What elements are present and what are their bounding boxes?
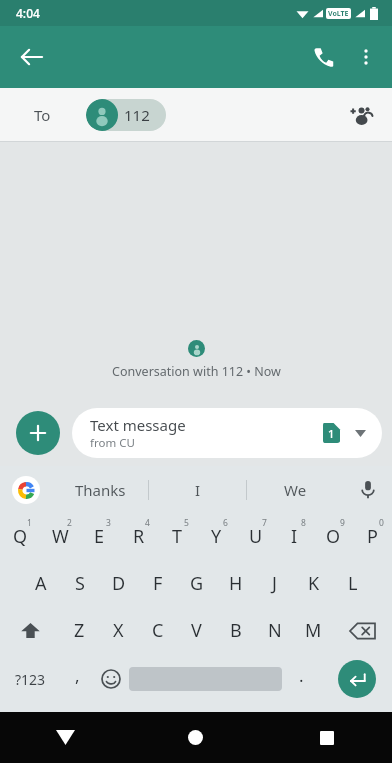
button[interactable]: . [282, 654, 321, 704]
button[interactable]: Z [60, 607, 99, 654]
button[interactable]: O [314, 513, 353, 560]
button[interactable]: Enter [338, 660, 376, 698]
button[interactable]: Hide keyboard [0, 712, 130, 763]
button[interactable]: I [275, 513, 314, 560]
button[interactable]: G [177, 560, 216, 607]
staticText: X [113, 618, 124, 643]
staticText: B [230, 618, 242, 643]
button[interactable]: SIM 1 [323, 423, 340, 443]
staticText: I [291, 524, 298, 549]
button[interactable]: V [177, 607, 216, 654]
button[interactable]: K [294, 560, 333, 607]
button[interactable]: Recent apps [261, 712, 392, 763]
button[interactable]: B [216, 607, 255, 654]
button[interactable]: Y [197, 513, 236, 560]
button[interactable]: 112 [86, 99, 166, 131]
button[interactable]: Text message [72, 408, 382, 458]
staticText: 7 [262, 517, 267, 529]
staticText: ?123 [15, 670, 46, 689]
button[interactable]: U [236, 513, 275, 560]
button[interactable]: E [80, 513, 119, 560]
button[interactable]: , [61, 654, 93, 704]
staticText: I [195, 480, 201, 500]
button[interactable]: More options [346, 37, 386, 77]
button[interactable]: Add people [340, 93, 384, 137]
button[interactable]: P [353, 513, 392, 560]
staticText: 2 [67, 517, 72, 529]
button[interactable]: F [138, 560, 177, 607]
button[interactable]: ?123 [0, 654, 61, 704]
staticText: R [133, 524, 145, 549]
button[interactable]: Thanks [52, 466, 148, 513]
button[interactable]: M [294, 607, 333, 654]
staticText: 9 [340, 517, 345, 529]
button[interactable]: H [216, 560, 255, 607]
staticText: M [305, 618, 322, 643]
staticText: , [75, 664, 80, 687]
button[interactable]: N [255, 607, 294, 654]
button[interactable]: L [333, 560, 372, 607]
button[interactable]: J [255, 560, 294, 607]
staticText: Text message [90, 415, 186, 435]
button[interactable]: R [119, 513, 158, 560]
staticText: D [112, 571, 126, 596]
button[interactable]: We [247, 466, 344, 513]
staticText: N [268, 618, 282, 643]
button[interactable]: Attach [16, 411, 60, 455]
staticText: 4:04 [16, 5, 40, 21]
button[interactable]: I [149, 466, 246, 513]
staticText: L [348, 571, 358, 596]
staticText: T [172, 524, 183, 549]
button[interactable]: S [60, 560, 99, 607]
button[interactable]: Emoji [93, 654, 129, 704]
staticText: 6 [223, 517, 228, 529]
staticText: A [35, 571, 47, 596]
staticText: Y [211, 524, 222, 549]
button[interactable]: Change SIM [348, 421, 372, 445]
staticText: 112 [124, 105, 150, 125]
staticText: 4 [145, 517, 150, 529]
staticText: Q [13, 524, 28, 549]
button[interactable]: W [40, 513, 80, 560]
staticText: U [249, 524, 263, 549]
button[interactable]: T [158, 513, 197, 560]
staticText: Z [74, 618, 85, 643]
staticText: . [299, 664, 304, 687]
staticText: K [308, 571, 320, 596]
staticText: 8 [301, 517, 306, 529]
button[interactable]: Shift [0, 607, 60, 654]
staticText: VoLTE [328, 9, 349, 19]
staticText: W [52, 524, 69, 549]
staticText: G [190, 571, 204, 596]
staticText: We [284, 480, 307, 500]
button[interactable]: Google [0, 466, 52, 513]
staticText: from CU [90, 435, 135, 451]
staticText: Thanks [75, 480, 126, 500]
staticText: H [229, 571, 243, 596]
staticText: V [191, 618, 202, 643]
staticText: To [34, 105, 51, 125]
staticText: 3 [106, 517, 111, 529]
button[interactable]: Call [302, 35, 346, 79]
staticText: P [367, 524, 378, 549]
button[interactable]: X [99, 607, 138, 654]
button[interactable]: Q [0, 513, 40, 560]
staticText: 5 [184, 517, 189, 529]
button[interactable]: Back [8, 33, 56, 81]
button[interactable]: Backspace [333, 607, 392, 654]
button[interactable]: A [21, 560, 60, 607]
button[interactable]: Home [130, 712, 261, 763]
staticText: 1 [27, 517, 32, 529]
staticText: S [75, 571, 85, 596]
staticText: F [153, 571, 163, 596]
button[interactable]: D [99, 560, 138, 607]
staticText: 0 [379, 517, 384, 529]
button[interactable]: C [138, 607, 177, 654]
staticText: J [272, 571, 277, 596]
staticText: O [326, 524, 341, 549]
staticText: 1 [328, 426, 335, 441]
button[interactable]: Voice input [344, 466, 392, 513]
staticText: C [152, 618, 164, 643]
staticText: Conversation with 112 • Now [112, 363, 281, 380]
